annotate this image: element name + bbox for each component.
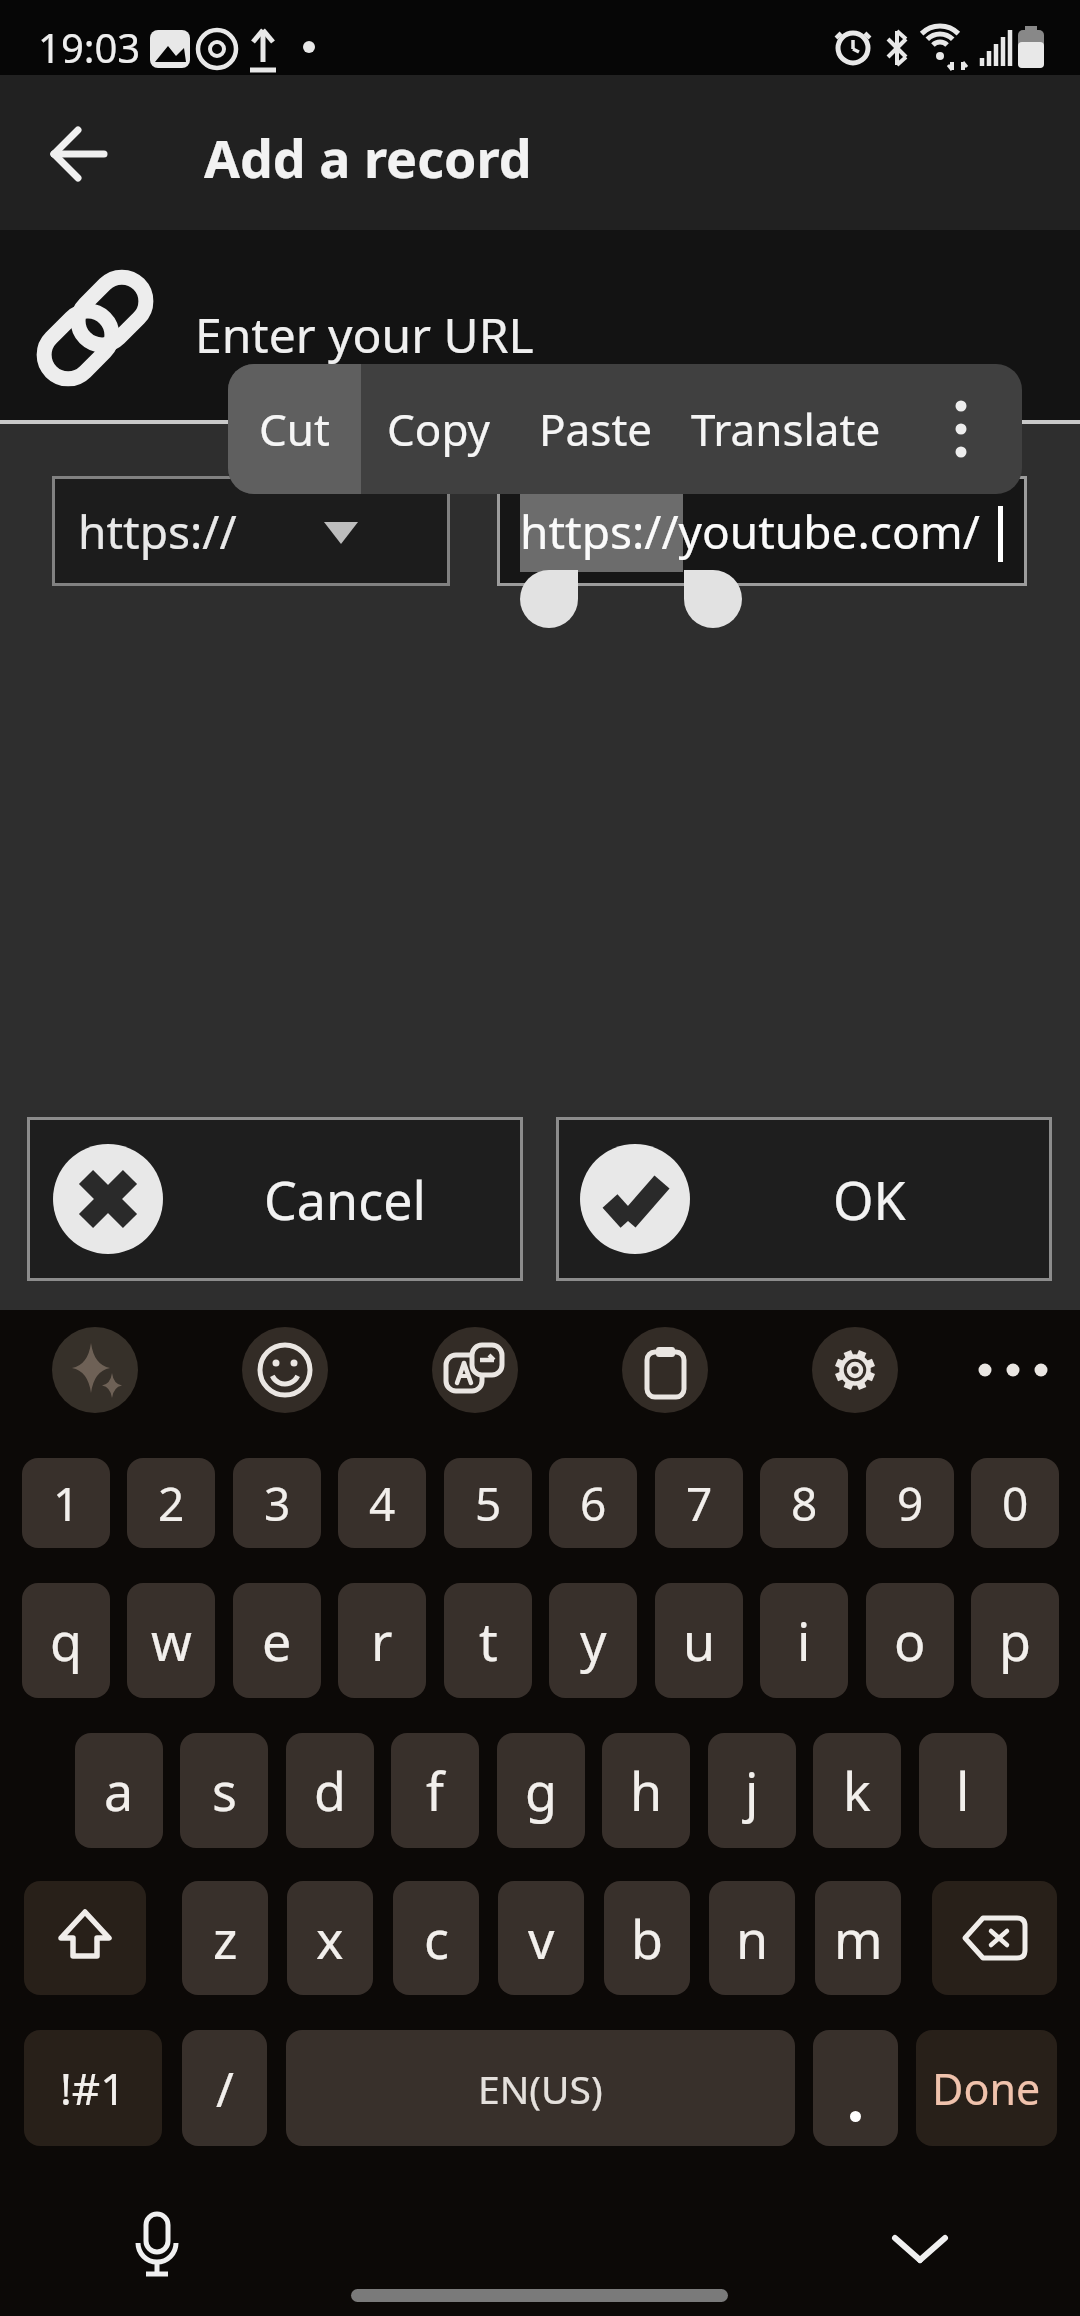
staticText: 0 [1002, 1472, 1029, 1535]
staticText: Add a record [204, 122, 532, 193]
staticText: Done [932, 2059, 1041, 2118]
button[interactable]: u [655, 1583, 743, 1698]
button[interactable]: k [813, 1733, 901, 1848]
button[interactable] [622, 1327, 708, 1413]
button[interactable]: b [604, 1881, 690, 1995]
staticText: 2 [158, 1472, 185, 1535]
button[interactable]: 2 [127, 1458, 215, 1548]
staticText: d [314, 1755, 346, 1826]
button[interactable]: https:// [52, 476, 450, 586]
button[interactable]: 7 [655, 1458, 743, 1548]
staticText: m [834, 1903, 883, 1974]
button[interactable]: a [75, 1733, 163, 1848]
button[interactable]: z [182, 1881, 268, 1995]
button[interactable]: https://youtube.com/ [497, 476, 1027, 586]
staticText: v [528, 1903, 555, 1974]
staticText: Enter your URL [195, 302, 534, 367]
button[interactable]: p [971, 1583, 1059, 1698]
staticText: j [745, 1755, 759, 1826]
button[interactable] [812, 1327, 898, 1413]
staticText: Paste [539, 399, 653, 459]
button[interactable]: t [444, 1583, 532, 1698]
staticText: b [631, 1903, 663, 1974]
button[interactable]: f [391, 1733, 479, 1848]
button[interactable]: g [497, 1733, 585, 1848]
button[interactable]: 3 [233, 1458, 321, 1548]
button[interactable]: OK [556, 1117, 1052, 1281]
staticText: Copy [387, 399, 491, 459]
staticText: e [262, 1605, 292, 1676]
button[interactable]: l [919, 1733, 1007, 1848]
button[interactable]: y [549, 1583, 637, 1698]
button[interactable]: Done [916, 2030, 1057, 2146]
button[interactable] [432, 1327, 518, 1413]
button[interactable]: 1 [22, 1458, 110, 1548]
button[interactable] [24, 1881, 146, 1995]
staticText: 8 [791, 1472, 818, 1535]
staticText: 19:03 [38, 20, 141, 74]
button[interactable] [932, 1881, 1057, 1995]
button[interactable]: Copy [361, 364, 516, 494]
button[interactable]: s [180, 1733, 268, 1848]
button[interactable]: v [498, 1881, 584, 1995]
staticText: t [479, 1605, 498, 1676]
button[interactable]: h [602, 1733, 690, 1848]
button[interactable] [813, 2030, 898, 2146]
staticText: p [999, 1605, 1031, 1676]
staticText: f [426, 1755, 444, 1826]
staticText: q [50, 1605, 82, 1676]
button[interactable]: 4 [338, 1458, 426, 1548]
staticText: r [371, 1605, 393, 1676]
button[interactable] [928, 364, 1022, 494]
button[interactable]: e [233, 1583, 321, 1698]
button[interactable]: 0 [971, 1458, 1059, 1548]
staticText: c [424, 1903, 449, 1974]
staticText: 4 [369, 1472, 396, 1535]
button[interactable]: n [709, 1881, 795, 1995]
button[interactable]: Translate [691, 364, 881, 494]
staticText: https:// [78, 500, 237, 563]
staticText: https://youtube.com/ [520, 500, 980, 563]
button[interactable]: i [760, 1583, 848, 1698]
button[interactable]: 6 [549, 1458, 637, 1548]
staticText: x [316, 1903, 344, 1974]
button[interactable]: 9 [866, 1458, 954, 1548]
button[interactable]: !#1 [24, 2030, 162, 2146]
button[interactable]: Cancel [27, 1117, 523, 1281]
staticText: l [956, 1755, 970, 1826]
staticText: o [894, 1605, 926, 1676]
button[interactable]: j [708, 1733, 796, 1848]
staticText: EN(US) [478, 2062, 603, 2115]
button[interactable] [242, 1327, 328, 1413]
button[interactable]: m [815, 1881, 901, 1995]
button[interactable]: d [286, 1733, 374, 1848]
button[interactable]: x [287, 1881, 373, 1995]
staticText: Cancel [264, 1164, 426, 1235]
button[interactable]: c [393, 1881, 479, 1995]
button[interactable] [52, 128, 108, 180]
staticText: OK [833, 1164, 906, 1235]
button[interactable]: w [127, 1583, 215, 1698]
staticText: u [683, 1605, 716, 1676]
staticText: s [212, 1755, 237, 1826]
button[interactable]: EN(US) [286, 2030, 795, 2146]
staticText: / [216, 2056, 234, 2121]
button[interactable]: q [22, 1583, 110, 1698]
staticText: k [843, 1755, 871, 1826]
staticText: !#1 [60, 2058, 126, 2118]
staticText: g [525, 1755, 557, 1826]
button[interactable]: Paste [516, 364, 676, 494]
button[interactable]: o [866, 1583, 954, 1698]
staticText: 6 [580, 1472, 607, 1535]
staticText: a [104, 1755, 134, 1826]
button[interactable] [52, 1327, 138, 1413]
staticText: 5 [475, 1472, 502, 1535]
button[interactable]: Cut [228, 364, 361, 494]
button[interactable]: / [182, 2030, 267, 2146]
staticText: 3 [264, 1472, 291, 1535]
button[interactable]: r [338, 1583, 426, 1698]
staticText: 9 [897, 1472, 924, 1535]
button[interactable]: 8 [760, 1458, 848, 1548]
staticText: y [580, 1605, 607, 1676]
button[interactable]: 5 [444, 1458, 532, 1548]
